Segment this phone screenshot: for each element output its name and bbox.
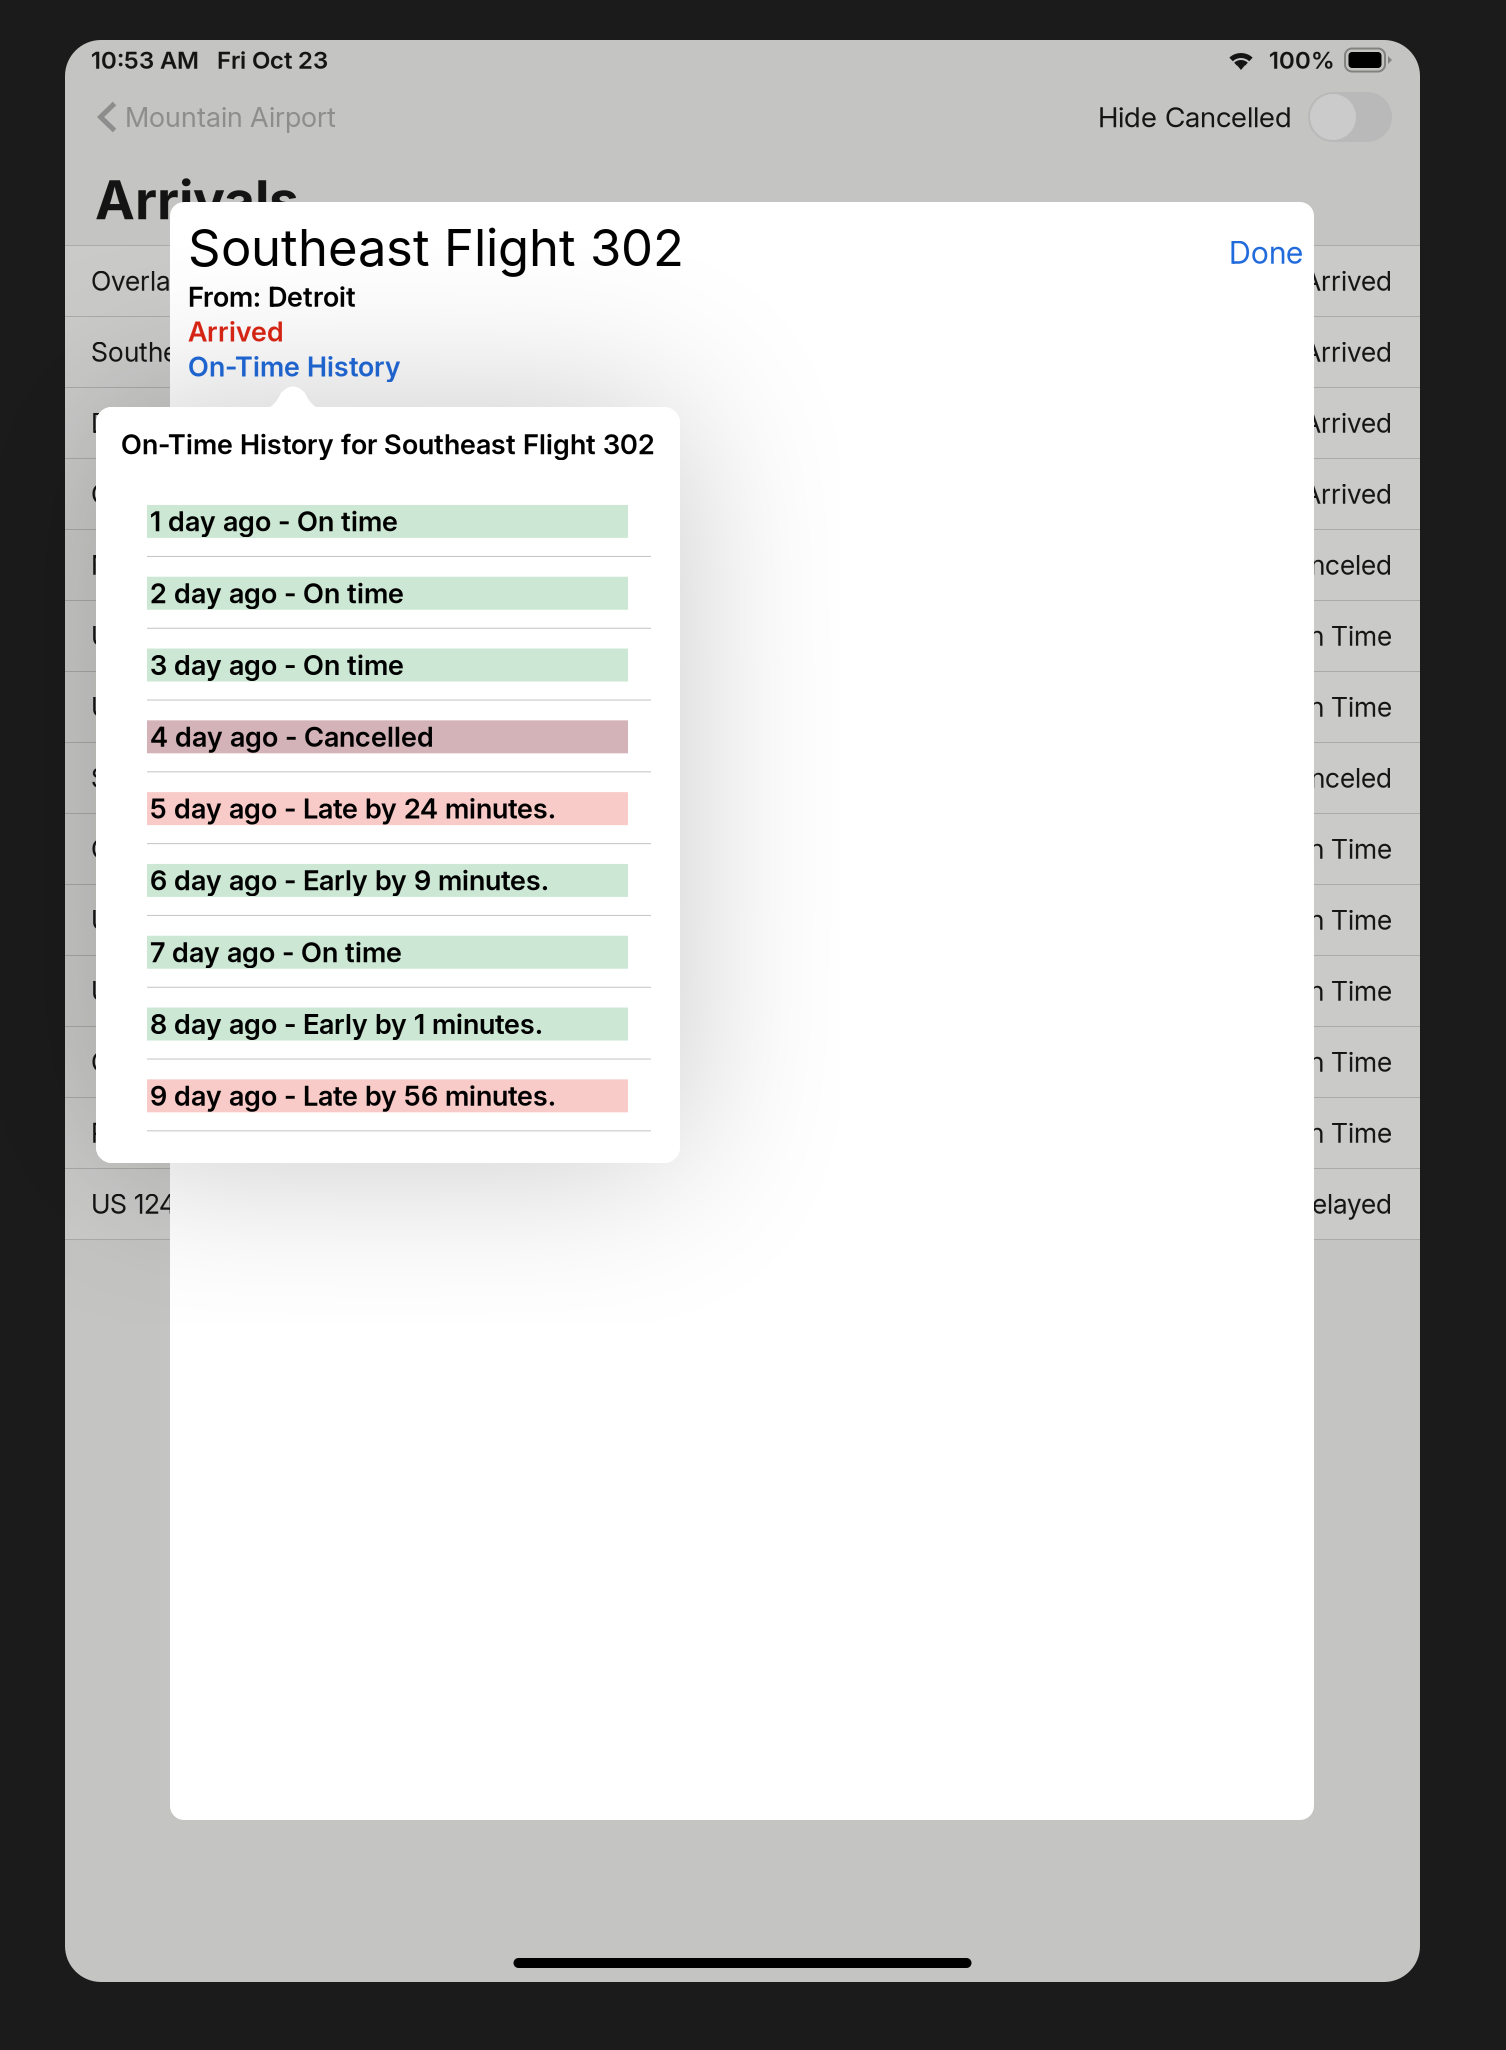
staticText: Central 456: [91, 478, 235, 510]
staticText: On Time: [1289, 620, 1392, 652]
staticText: On Time: [1289, 833, 1392, 865]
staticText: Arrived: [188, 315, 284, 348]
staticText: Crosswind 12: [91, 833, 254, 865]
staticText: On Time: [1289, 691, 1392, 723]
staticText: 1 day ago - On time: [150, 505, 398, 538]
staticText: Mountain Airport: [125, 100, 336, 134]
staticText: Arrived: [1303, 265, 1392, 297]
staticText: Delayed: [1293, 1188, 1392, 1220]
staticText: On-Time History for Southeast Flight 302: [121, 428, 655, 461]
staticText: 5 day ago - Late by 24 minutes.: [150, 792, 556, 825]
staticText: On Time: [1289, 1046, 1392, 1078]
button[interactable]: Hide Cancelled: [1098, 86, 1420, 148]
staticText: On Time: [1289, 975, 1392, 1007]
staticText: Canceled: [1276, 762, 1392, 794]
staticText: Arrivals: [95, 167, 299, 232]
button[interactable]: Mountain Airport: [65, 86, 336, 148]
staticText: Canceled: [1276, 549, 1392, 581]
staticText: 8 day ago - Early by 1 minutes.: [150, 1007, 543, 1041]
staticText: Pacific 654: [91, 1117, 230, 1149]
staticText: On Time: [1289, 1117, 1392, 1149]
staticText: Hide Cancelled: [1098, 100, 1292, 134]
staticText: 4 day ago - Cancelled: [150, 720, 434, 753]
staticText: 6 day ago - Early by 9 minutes.: [150, 864, 549, 897]
staticText: Overland 230: [91, 265, 258, 297]
staticText: Fri Oct 23: [217, 45, 328, 74]
staticText: 7 day ago - On time: [150, 936, 402, 969]
staticText: Detroit 1190: [91, 407, 234, 439]
staticText: 9 day ago - Late by 56 minutes.: [150, 1079, 556, 1112]
staticText: Arrived: [1303, 407, 1392, 439]
staticText: 2 day ago - On time: [150, 577, 404, 610]
staticText: On-Time History: [188, 350, 401, 383]
staticText: Coastal 77: [91, 1046, 222, 1078]
staticText: United 330: [91, 904, 226, 936]
button[interactable]: On-Time History: [188, 350, 401, 383]
staticText: Arrived: [1303, 336, 1392, 368]
staticText: From: Detroit: [188, 280, 356, 313]
staticText: Southeast Flight 302: [91, 336, 346, 368]
staticText: Sunrise 44: [91, 762, 224, 794]
button[interactable]: Done: [1229, 202, 1314, 271]
staticText: 100%: [1269, 45, 1335, 74]
staticText: United 915: [91, 691, 219, 723]
staticText: United 1027: [91, 975, 235, 1007]
staticText: US 1240: [91, 1188, 193, 1220]
staticText: Northeast 88: [91, 549, 253, 581]
staticText: United 702: [91, 620, 224, 652]
staticText: Arrived: [1303, 478, 1392, 510]
staticText: 3 day ago - On time: [150, 648, 404, 682]
staticText: 10:53 AM: [91, 45, 199, 74]
staticText: On Time: [1289, 904, 1392, 936]
staticText: Southeast Flight 302: [188, 217, 684, 278]
staticText: Done: [1229, 234, 1303, 271]
